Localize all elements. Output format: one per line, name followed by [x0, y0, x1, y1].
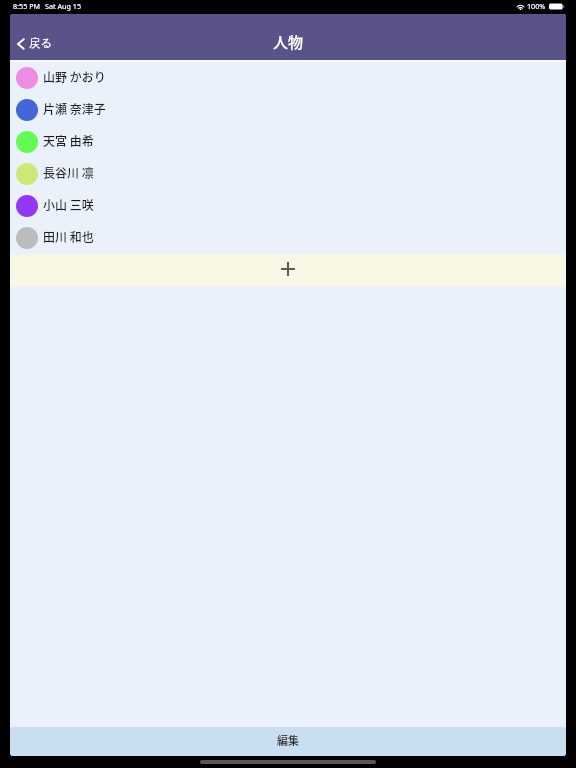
staticText: 田川 和也 [43, 228, 94, 245]
staticText: 小山 三咲 [43, 196, 94, 213]
button[interactable]: 山野 かおり [10, 62, 566, 94]
staticText: 人物 [273, 31, 304, 53]
button[interactable]: 編集 [10, 727, 566, 756]
staticText: 100% [527, 1, 546, 11]
button[interactable]: Add person [10, 254, 566, 286]
staticText: 片瀬 奈津子 [43, 100, 106, 117]
button[interactable]: 長谷川 凛 [10, 158, 566, 190]
button[interactable]: 田川 和也 [10, 222, 566, 254]
staticText: 戻る [29, 36, 53, 51]
staticText: 天宮 由希 [43, 132, 94, 149]
button[interactable]: 戻る [10, 32, 59, 55]
staticText: 編集 [277, 732, 299, 748]
staticText: 長谷川 凛 [43, 164, 94, 181]
button[interactable]: 天宮 由希 [10, 126, 566, 158]
button[interactable]: 片瀬 奈津子 [10, 94, 566, 126]
staticText: 8:55 PM [13, 1, 40, 11]
staticText: Sat Aug 15 [45, 1, 81, 11]
staticText: 山野 かおり [43, 68, 106, 85]
button[interactable]: 小山 三咲 [10, 190, 566, 222]
